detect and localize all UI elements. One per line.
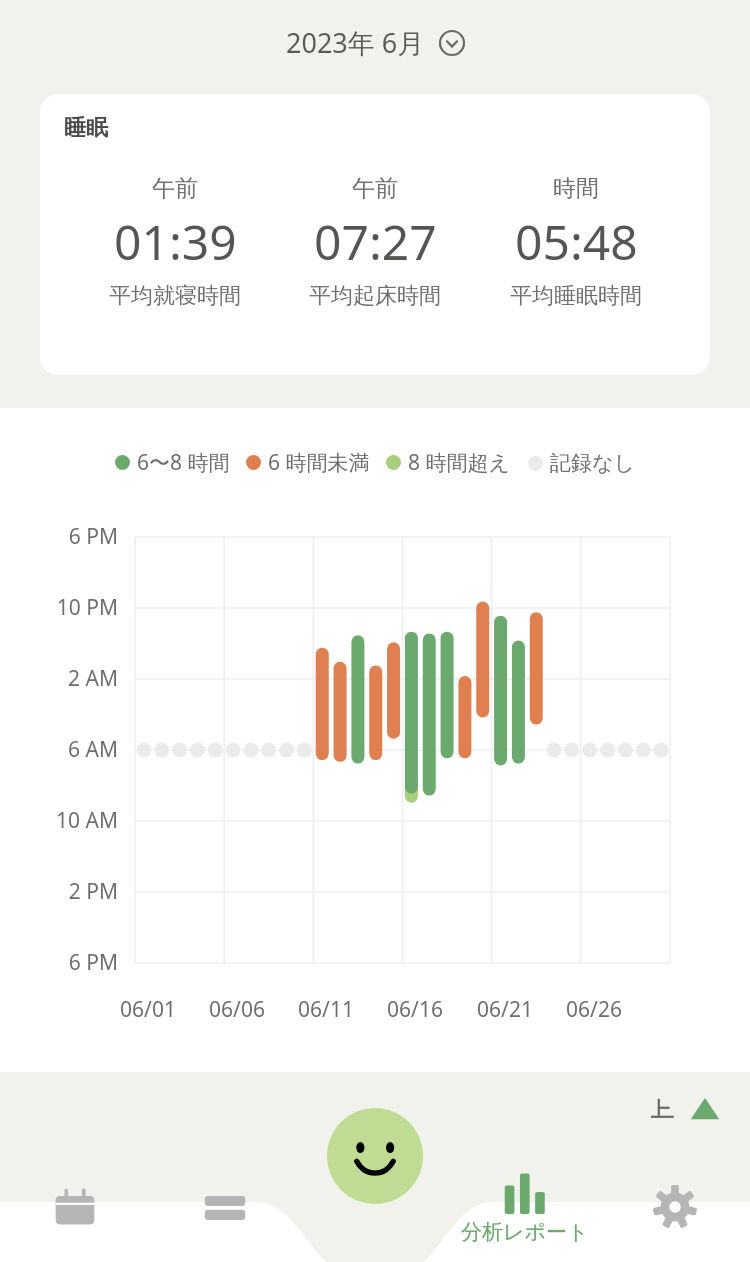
staticText: 07:27 <box>314 209 437 274</box>
staticText: 06/21 <box>460 995 550 1024</box>
staticText: 2 AM <box>18 664 118 693</box>
staticText: 平均睡眠時間 <box>510 282 642 310</box>
button[interactable]: 分析レポート <box>450 1152 600 1262</box>
staticText: 6 時間未満 <box>268 448 370 477</box>
button[interactable]: 睡眠 <box>40 94 710 375</box>
staticText: 6 AM <box>18 735 118 764</box>
button[interactable]: 上へスクロール <box>642 1086 728 1132</box>
staticText: 01:39 <box>114 209 237 274</box>
staticText: 平均就寝時間 <box>109 282 241 310</box>
staticText: 06/11 <box>281 995 371 1024</box>
staticText: 午前 <box>352 174 398 203</box>
staticText: 分析レポート <box>461 1219 589 1245</box>
staticText: 平均起床時間 <box>309 282 441 310</box>
staticText: 05:48 <box>515 209 638 274</box>
staticText: 時間 <box>553 174 599 203</box>
button[interactable]: 2023年 6月 <box>278 20 473 65</box>
staticText: 2023年 6月 <box>286 24 425 61</box>
staticText: 06/16 <box>370 995 460 1024</box>
staticText: 記録なし <box>550 450 635 476</box>
button[interactable]: ホーム <box>327 1108 423 1204</box>
staticText: 06/26 <box>549 995 639 1024</box>
staticText: 2 PM <box>18 877 118 906</box>
staticText: 06/06 <box>192 995 282 1024</box>
staticText: 10 AM <box>18 806 118 835</box>
staticText: 06/01 <box>103 995 193 1024</box>
staticText: 6 PM <box>18 522 118 551</box>
staticText: 6〜8 時間 <box>137 448 230 477</box>
staticText: 睡眠 <box>64 114 108 142</box>
staticText: 午前 <box>152 174 198 203</box>
button[interactable]: リスト <box>150 1152 300 1262</box>
staticText: 8 時間超え <box>408 448 510 477</box>
button[interactable]: カレンダー <box>0 1152 150 1262</box>
staticText: 6 PM <box>18 948 118 977</box>
button[interactable]: 設定 <box>600 1152 750 1262</box>
staticText: 10 PM <box>18 593 118 622</box>
